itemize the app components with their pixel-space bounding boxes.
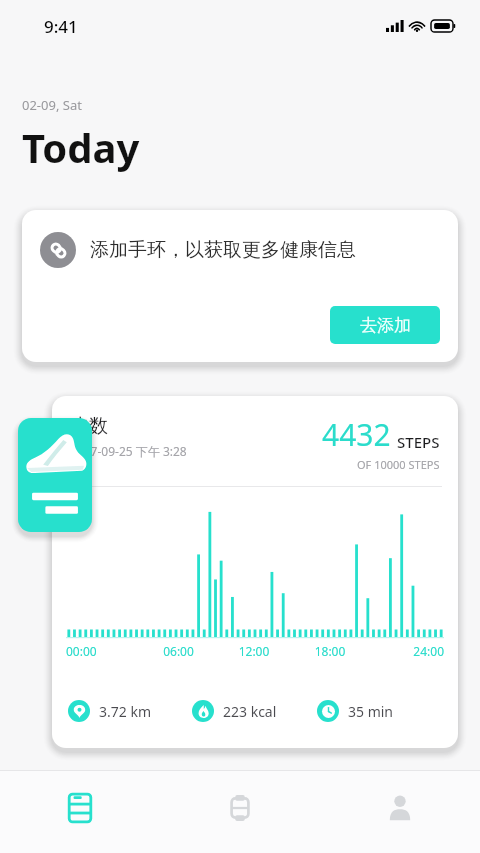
- button[interactable]: Tab: [320, 771, 480, 853]
- staticText: 24:00: [368, 643, 444, 659]
- staticText: STEPS: [397, 432, 440, 452]
- staticText: 2017-09-25 下午 3:28: [70, 443, 187, 459]
- staticText: 02-09, Sat: [22, 96, 82, 114]
- staticText: 35 min: [348, 702, 394, 721]
- staticText: 18:00: [292, 643, 368, 659]
- staticText: 06:00: [141, 643, 216, 659]
- staticText: Today: [22, 120, 140, 174]
- staticText: 步数: [70, 414, 108, 438]
- button[interactable]: 去添加: [330, 306, 440, 344]
- staticText: 添加手环，以获取更多健康信息: [90, 238, 356, 262]
- staticText: 9:41: [44, 15, 78, 38]
- staticText: OF 10000 STEPS: [357, 457, 440, 472]
- button[interactable]: Today tab: [0, 771, 160, 853]
- staticText: 223 kcal: [223, 702, 277, 721]
- staticText: 00:00: [66, 643, 141, 659]
- staticText: 3.72 km: [99, 702, 151, 721]
- staticText: 12:00: [216, 643, 292, 659]
- staticText: 4432: [322, 414, 391, 455]
- button[interactable]: Tab: [160, 771, 320, 853]
- staticText: 去添加: [360, 315, 411, 336]
